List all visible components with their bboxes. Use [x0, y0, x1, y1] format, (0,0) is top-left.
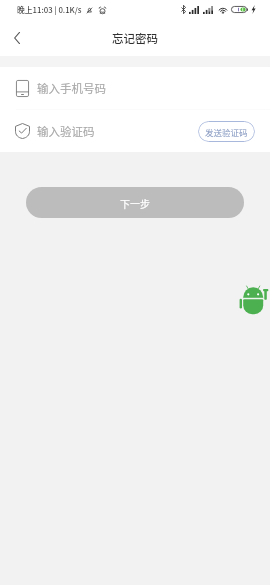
staticText: 输入验证码 — [37, 123, 95, 140]
button[interactable]: 下一步 — [26, 187, 244, 218]
staticText: 晚上11:03 | 0.1K/s — [17, 4, 82, 15]
staticText: 下一步 — [120, 196, 150, 210]
staticText: 输入手机号码 — [37, 80, 106, 97]
button[interactable]: Back — [0, 20, 34, 54]
button[interactable]: 发送验证码 — [198, 121, 255, 142]
button[interactable]: 输入手机号码 — [0, 67, 270, 109]
staticText: 忘记密码 — [112, 30, 158, 47]
staticText: 发送验证码 — [205, 126, 248, 138]
